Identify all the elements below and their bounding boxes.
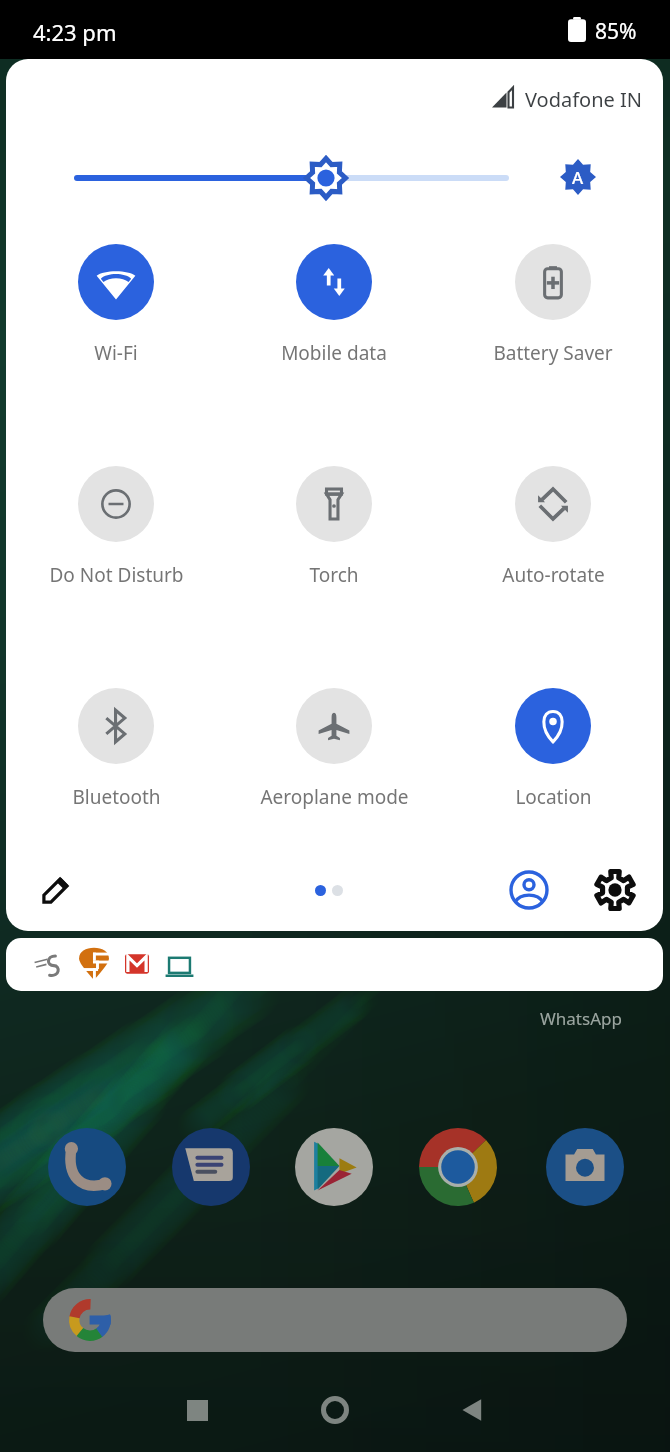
button[interactable]: Play Store: [295, 1128, 373, 1206]
staticText: Battery Saver: [493, 340, 613, 366]
button[interactable]: Recents: [161, 1374, 233, 1446]
button[interactable]: Home: [299, 1374, 371, 1446]
button[interactable]: Phone: [48, 1128, 126, 1206]
button[interactable]: Auto brightness: [546, 145, 610, 209]
staticText: A: [572, 166, 584, 189]
button[interactable]: Camera: [546, 1128, 624, 1206]
staticText: Aeroplane mode: [260, 784, 409, 810]
button[interactable]: Settings: [587, 862, 643, 918]
button[interactable]: Search: [43, 1288, 627, 1352]
button[interactable]: Bluetooth: [16, 688, 216, 810]
button[interactable]: Torch: [234, 466, 434, 588]
button[interactable]: Mobile data: [234, 244, 434, 366]
button[interactable]: Back: [437, 1374, 509, 1446]
button[interactable]: Aeroplane mode: [234, 688, 434, 810]
button[interactable]: Auto-rotate: [453, 466, 653, 588]
button[interactable]: Messages: [172, 1128, 250, 1206]
staticText: Bluetooth: [72, 784, 161, 810]
button[interactable]: Chrome: [419, 1128, 497, 1206]
button[interactable]: Battery Saver: [453, 244, 653, 366]
staticText: Mobile data: [281, 340, 387, 366]
staticText: Vodafone IN: [525, 86, 643, 113]
staticText: Wi-Fi: [94, 340, 138, 366]
button[interactable]: Edit tiles: [28, 862, 84, 918]
staticText: 85%: [595, 17, 637, 46]
button[interactable]: Notifications: [6, 938, 663, 991]
staticText: Do Not Disturb: [49, 562, 184, 588]
staticText: Location: [515, 784, 592, 810]
button[interactable]: Location: [453, 688, 653, 810]
staticText: WhatsApp: [540, 1007, 622, 1030]
staticText: 4:23 pm: [33, 17, 117, 47]
staticText: Torch: [309, 562, 359, 588]
button[interactable]: Do Not Disturb: [16, 466, 216, 588]
button[interactable]: User: [501, 862, 557, 918]
staticText: Auto-rotate: [502, 562, 605, 588]
button[interactable]: Wi-Fi: [16, 244, 216, 366]
